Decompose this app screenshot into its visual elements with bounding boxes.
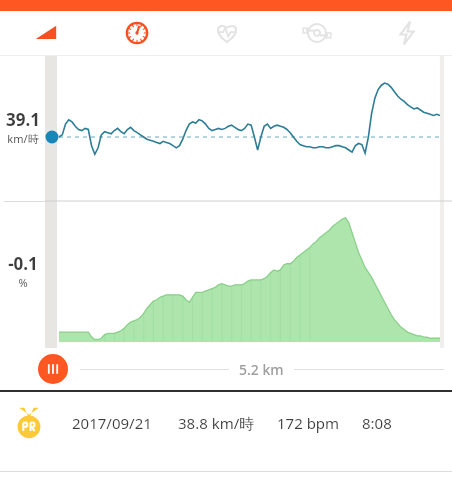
button[interactable]: Personal record bbox=[0, 392, 452, 454]
other: Personal record bbox=[10, 404, 48, 442]
staticText: km/時 bbox=[7, 131, 39, 146]
button[interactable]: Speed bbox=[91, 11, 182, 55]
staticText: 8:08 bbox=[362, 413, 392, 433]
staticText: 2017/09/21 bbox=[72, 413, 152, 433]
button[interactable]: Map bbox=[0, 11, 91, 55]
staticText: 38.8 km/時 bbox=[178, 413, 255, 433]
staticText: -0.1 bbox=[8, 252, 38, 275]
button[interactable]: Pause bbox=[38, 354, 68, 384]
button[interactable]: Cadence bbox=[272, 11, 362, 55]
staticText: % bbox=[18, 275, 28, 290]
staticText: 39.1 bbox=[6, 108, 40, 131]
staticText: 5.2 km bbox=[239, 360, 284, 379]
button[interactable]: Heart rate bbox=[182, 11, 272, 55]
staticText: 172 bpm bbox=[277, 413, 340, 433]
button[interactable]: Power bbox=[362, 11, 452, 55]
